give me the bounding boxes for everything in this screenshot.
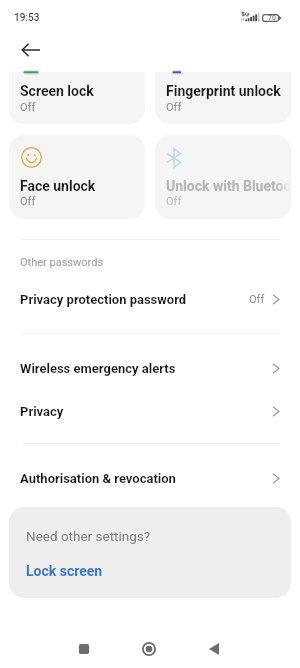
staticText: Privacy protection password [20,292,249,307]
staticText: Off [249,293,265,306]
staticText: Screen lock [20,83,94,99]
button[interactable]: Back [11,31,49,69]
staticText: 19:53 [14,12,40,24]
staticText: Fingerprint unlock [166,83,281,99]
button[interactable]: Lock screen [26,563,103,579]
staticText: Face unlock [20,178,96,194]
staticText: Wireless emergency alerts [20,361,272,376]
button[interactable]: Home [127,627,171,668]
button[interactable]: Recent apps [62,627,106,668]
button[interactable]: Privacy [0,390,300,433]
staticText: Other passwords [20,256,104,269]
staticText: Off [20,195,36,208]
staticText: Off [166,195,182,208]
staticText: Off [166,101,182,114]
staticText: Authorisation & revocation [20,471,272,486]
button[interactable]: Unlock with Bluetooth [155,135,291,219]
button[interactable]: Authorisation & revocation [0,457,300,500]
staticText: Need other settings? [26,528,151,544]
staticText: Unlock with Bluetooth [166,178,291,194]
button[interactable] [155,72,291,124]
staticText: Off [20,101,36,114]
button[interactable]: Privacy protection password [0,278,300,321]
button[interactable]: Back [192,627,236,668]
button[interactable] [9,72,145,124]
staticText: Lock screen [26,563,103,579]
staticText: Privacy [20,404,272,419]
staticText: 70 [268,14,276,22]
button[interactable]: Wireless emergency alerts [0,347,300,390]
button[interactable] [9,135,145,219]
